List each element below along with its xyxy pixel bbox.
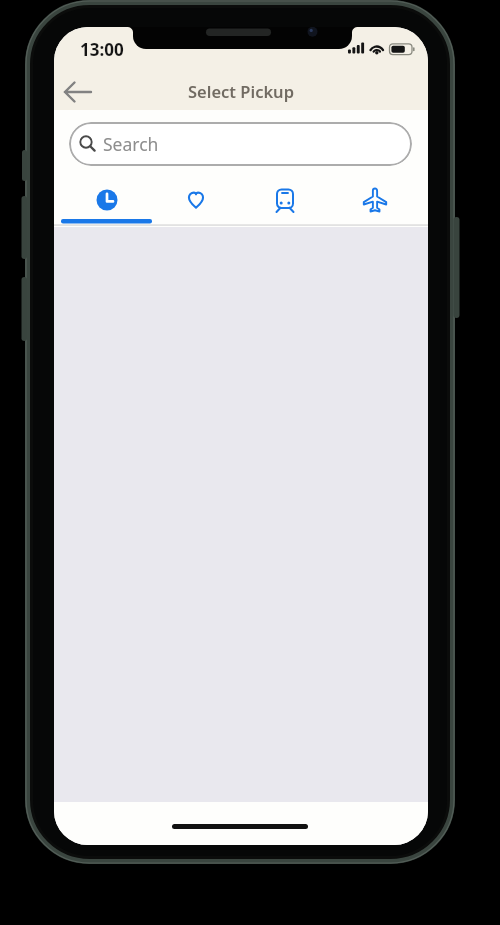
button[interactable] [58, 76, 98, 108]
button[interactable] [151, 180, 240, 220]
button[interactable] [330, 180, 420, 220]
button[interactable] [240, 180, 330, 220]
staticText: 13:00 [80, 38, 124, 61]
button[interactable]: Search [69, 122, 412, 166]
button[interactable] [62, 180, 151, 220]
staticText: Search [103, 132, 159, 156]
staticText: Select Pickup [188, 80, 294, 102]
